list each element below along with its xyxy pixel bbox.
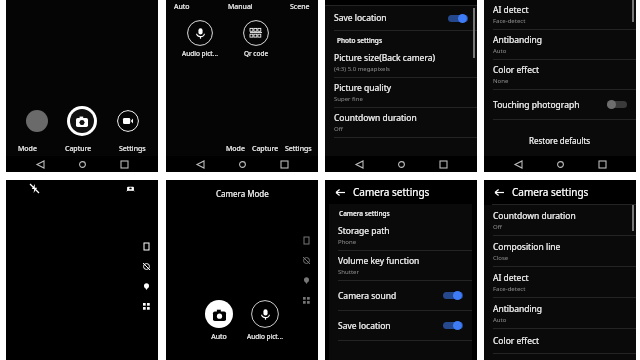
- button[interactable]: Mode: [226, 144, 245, 154]
- button[interactable]: Back: [192, 156, 208, 172]
- button[interactable]: Save location: [325, 6, 477, 30]
- staticText: Photo settings: [337, 36, 383, 45]
- button[interactable]: Camera sound: [329, 281, 472, 310]
- button[interactable]: On: [443, 321, 463, 330]
- button[interactable]: Save location: [329, 311, 472, 340]
- button[interactable]: Recents: [435, 156, 451, 172]
- button[interactable]: Countdown duration: [484, 205, 636, 235]
- staticText: Camera settings: [339, 209, 390, 218]
- staticText: Auto: [196, 332, 242, 342]
- staticText: Countdown duration: [334, 112, 417, 124]
- staticText: Auto: [493, 316, 507, 324]
- button[interactable]: Off: [607, 100, 627, 109]
- button[interactable]: Home: [393, 156, 409, 172]
- button[interactable]: Countdown duration: [325, 108, 477, 137]
- button[interactable]: Capture: [252, 144, 279, 154]
- staticText: Camera Mode: [216, 188, 269, 199]
- button[interactable]: Video: [117, 110, 139, 132]
- button[interactable]: Volume key function: [329, 251, 472, 280]
- button[interactable]: Color effect: [484, 329, 636, 353]
- button[interactable]: Manual: [228, 2, 253, 12]
- button[interactable]: Touching photograph: [484, 90, 636, 119]
- button[interactable]: Picture quality: [325, 78, 477, 107]
- button[interactable]: Antibanding: [484, 298, 636, 328]
- button[interactable]: Color effect: [484, 60, 636, 89]
- button[interactable]: Home: [552, 156, 568, 172]
- staticText: Off: [493, 223, 502, 231]
- button[interactable]: Auto: [174, 2, 190, 12]
- button[interactable]: AI detect: [484, 0, 636, 29]
- button[interactable]: Gallery: [26, 110, 48, 132]
- button[interactable]: Aspect ratio: [300, 234, 312, 246]
- button[interactable]: Home: [234, 156, 250, 172]
- staticText: Storage path: [338, 225, 390, 237]
- staticText: Color effect: [493, 64, 540, 76]
- staticText: Restore defaults: [529, 135, 591, 146]
- button[interactable]: Storage path: [329, 221, 472, 250]
- button[interactable]: AI detect: [484, 267, 636, 297]
- button[interactable]: Back: [32, 156, 48, 172]
- button[interactable]: Recents: [276, 156, 292, 172]
- staticText: Face-detect: [493, 285, 526, 293]
- button[interactable]: Antibanding: [484, 30, 636, 59]
- button[interactable]: Home: [74, 156, 90, 172]
- staticText: Audio pict...: [242, 332, 288, 341]
- button[interactable]: Auto: [196, 300, 242, 342]
- staticText: Save location: [338, 320, 391, 332]
- button[interactable]: HDR: [140, 260, 152, 272]
- button[interactable]: Audio pict...: [180, 20, 220, 58]
- button[interactable]: Capture: [65, 144, 92, 154]
- button[interactable]: Location: [140, 280, 152, 292]
- button[interactable]: Aspect ratio: [140, 240, 152, 252]
- staticText: AI detect: [493, 4, 529, 16]
- staticText: Touching photograph: [493, 99, 580, 111]
- button[interactable]: Picture size(Back camera): [325, 48, 477, 77]
- button[interactable]: Recents: [594, 156, 610, 172]
- button[interactable]: Scene: [290, 2, 310, 12]
- staticText: Camera settings: [512, 185, 589, 199]
- button[interactable]: Settings: [119, 144, 146, 154]
- staticText: Face-detect: [493, 17, 526, 25]
- staticText: Phone: [338, 238, 357, 246]
- button[interactable]: Capture: [67, 106, 97, 136]
- staticText: Save location: [334, 12, 387, 24]
- button[interactable]: Mode: [18, 144, 37, 154]
- button[interactable]: Grid: [300, 294, 312, 306]
- button[interactable]: On: [443, 291, 463, 300]
- button[interactable]: Back: [492, 185, 506, 199]
- button[interactable]: Audio pict...: [242, 300, 288, 341]
- staticText: Volume key function: [338, 255, 420, 267]
- button[interactable]: Location: [300, 274, 312, 286]
- staticText: Countdown duration: [493, 210, 576, 222]
- staticText: Antibanding: [493, 303, 543, 315]
- staticText: Picture quality: [334, 82, 392, 94]
- staticText: Picture size(Back camera): [334, 52, 436, 64]
- staticText: Close: [493, 254, 509, 262]
- staticText: Super fine: [334, 95, 363, 103]
- button[interactable]: Qr code: [236, 20, 276, 58]
- staticText: Auto: [493, 47, 507, 55]
- button[interactable]: Recents: [116, 156, 132, 172]
- button[interactable]: Grid: [140, 300, 152, 312]
- staticText: Composition line: [493, 241, 561, 253]
- button[interactable]: Back: [333, 185, 347, 199]
- staticText: (4:3) 5.0 megapixels: [334, 65, 390, 73]
- button[interactable]: On: [448, 14, 468, 23]
- staticText: AI detect: [493, 272, 529, 284]
- button[interactable]: Back: [510, 156, 526, 172]
- button[interactable]: Flash off: [28, 182, 40, 194]
- staticText: Shutter: [338, 268, 359, 276]
- button[interactable]: Settings: [285, 144, 312, 154]
- button[interactable]: Composition line: [484, 236, 636, 266]
- button[interactable]: Switch camera: [124, 182, 136, 194]
- button[interactable]: Back: [351, 156, 367, 172]
- staticText: Audio pict...: [180, 49, 220, 58]
- staticText: Off: [334, 125, 343, 133]
- staticText: Qr code: [236, 49, 276, 58]
- staticText: Antibanding: [493, 34, 543, 46]
- staticText: Camera sound: [338, 290, 397, 302]
- button[interactable]: Restore defaults: [484, 130, 636, 150]
- staticText: Color effect: [493, 335, 540, 347]
- staticText: Camera settings: [353, 185, 430, 199]
- button[interactable]: HDR: [300, 254, 312, 266]
